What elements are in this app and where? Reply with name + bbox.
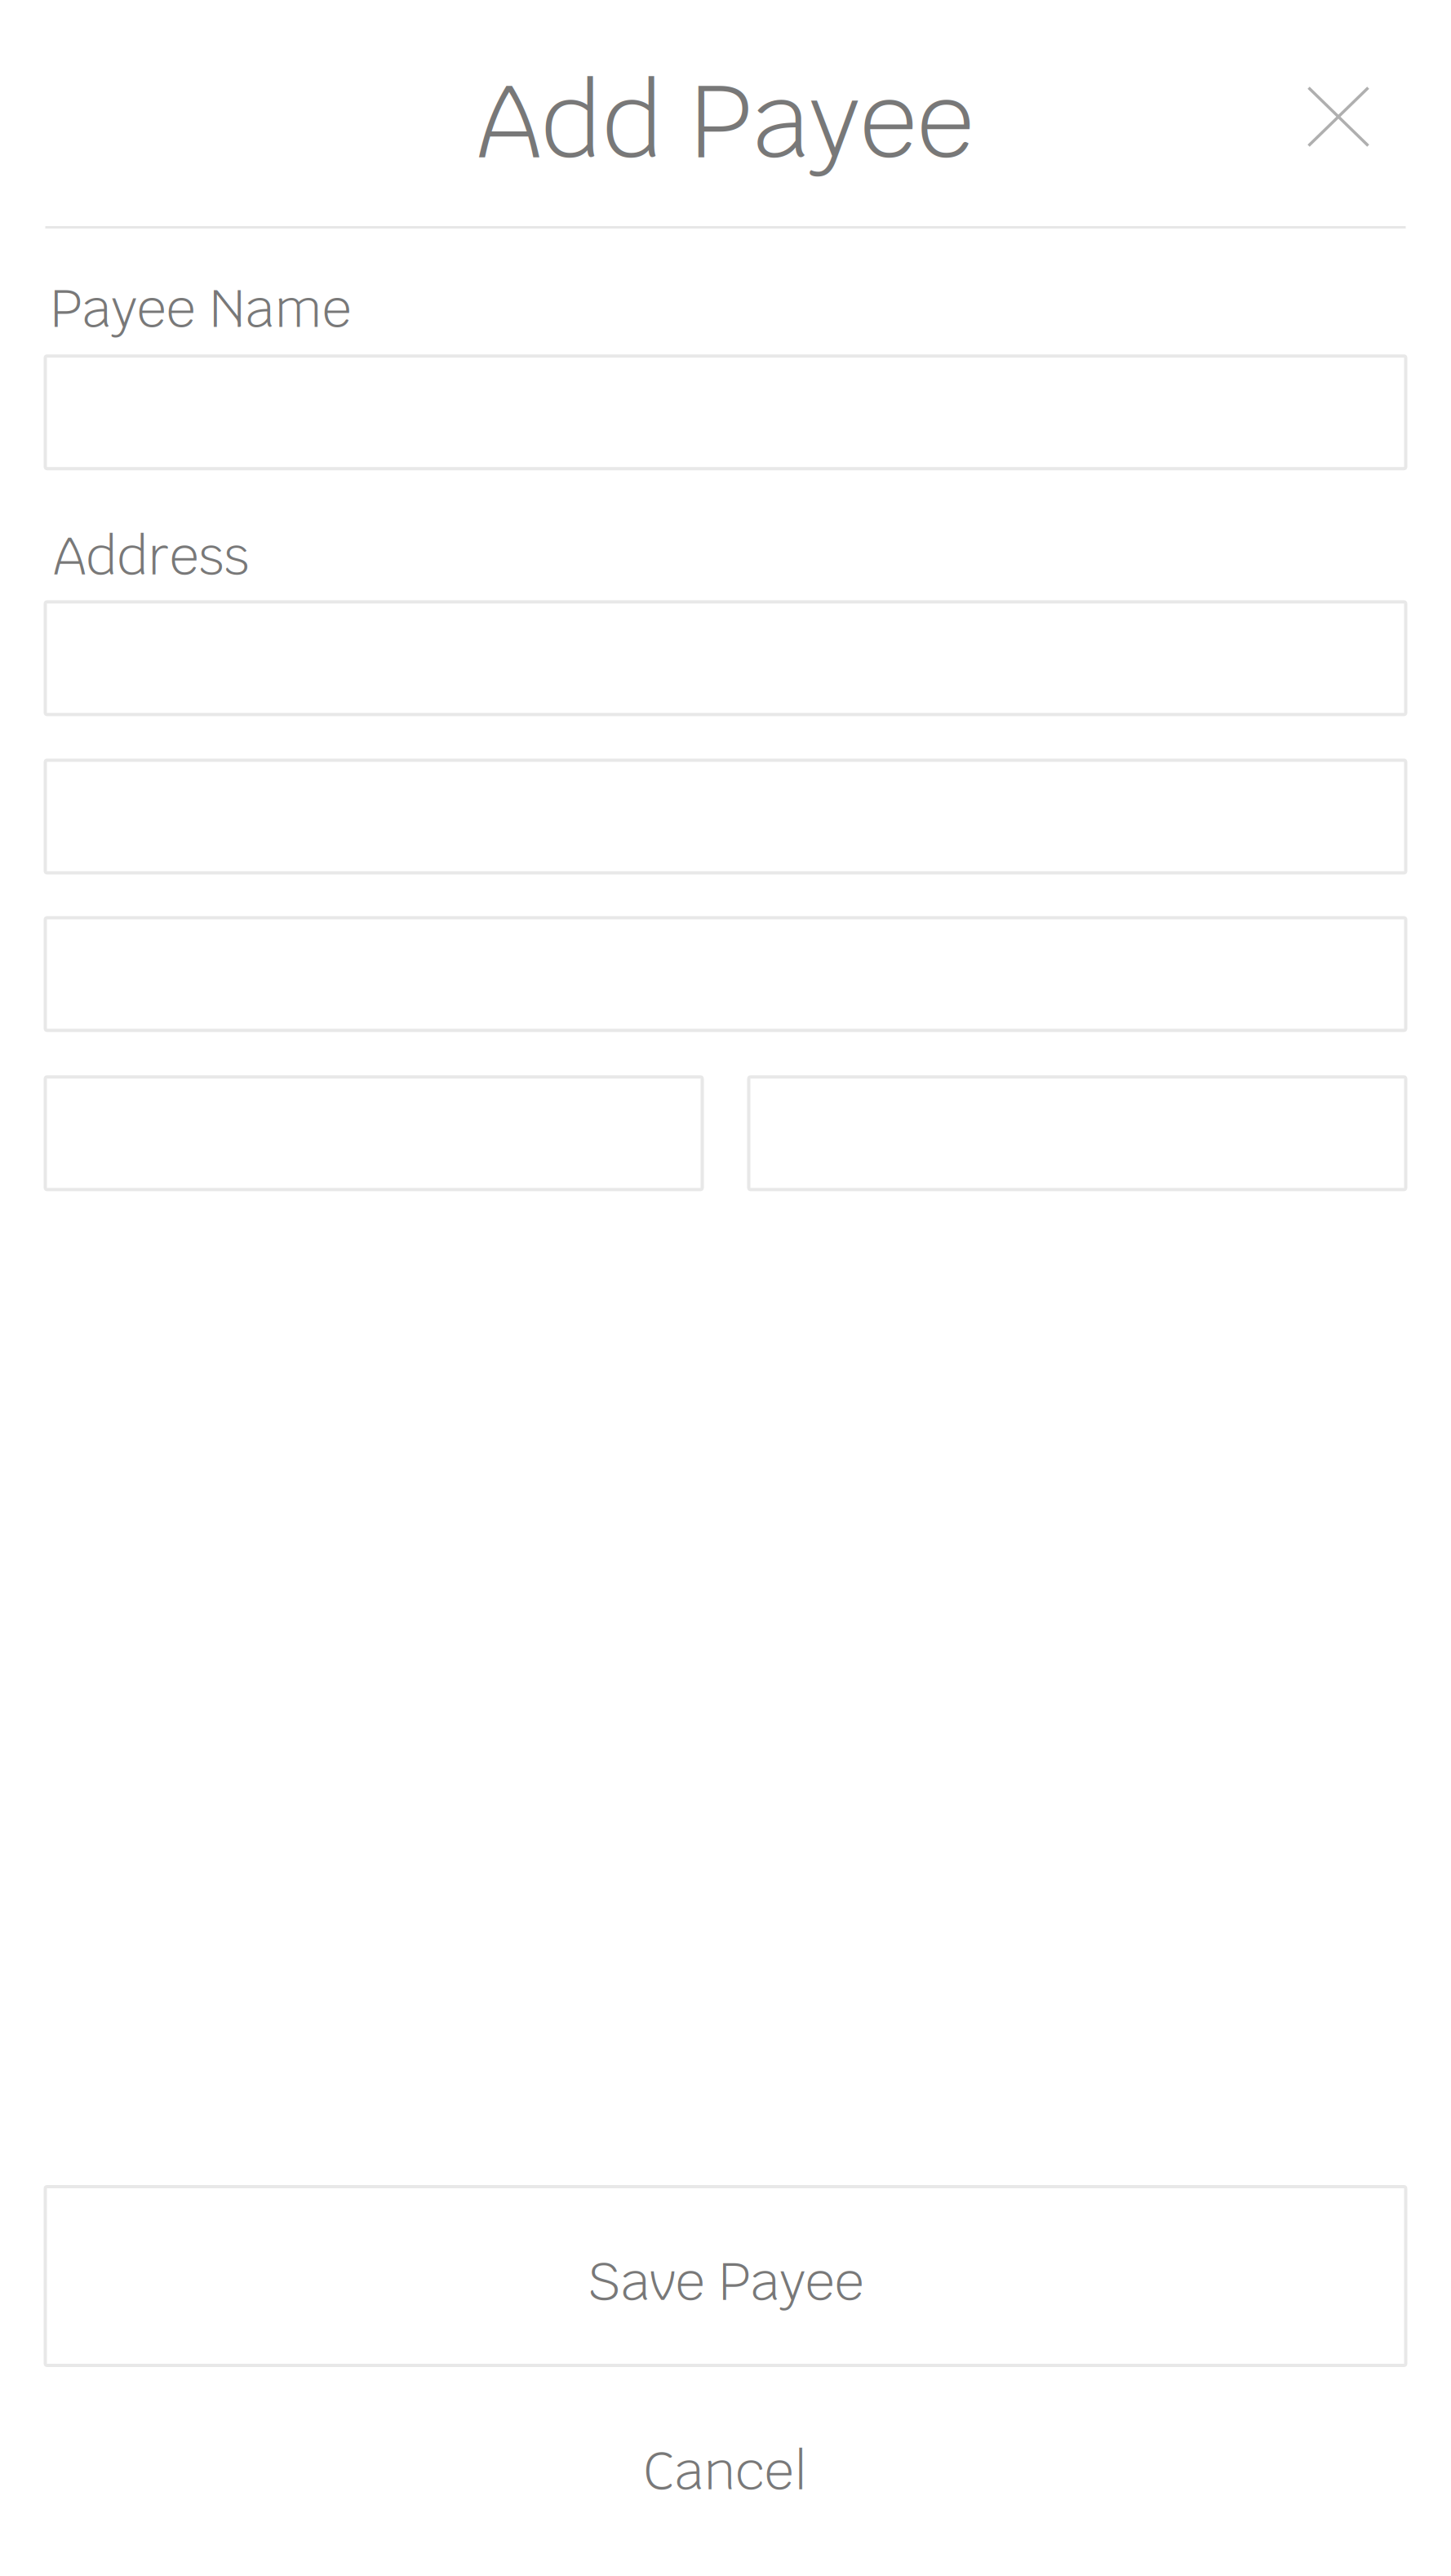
- button[interactable]: Address line 2: [45, 760, 1406, 873]
- staticText: Cancel: [643, 2437, 808, 2505]
- staticText: Payee Name: [50, 274, 351, 342]
- button[interactable]: Payee Name: [45, 356, 1406, 469]
- button[interactable]: ZIP code: [749, 1077, 1406, 1190]
- button[interactable]: Save Payee: [45, 2187, 1406, 2365]
- button[interactable]: Cancel: [45, 2445, 1406, 2497]
- button[interactable]: City: [45, 918, 1406, 1030]
- staticText: Save Payee: [587, 2247, 864, 2315]
- button[interactable]: Close: [1273, 51, 1404, 182]
- staticText: Add Payee: [477, 54, 974, 187]
- staticText: Address: [53, 522, 249, 590]
- button[interactable]: State: [45, 1077, 702, 1190]
- button[interactable]: Address line 1: [45, 602, 1406, 715]
